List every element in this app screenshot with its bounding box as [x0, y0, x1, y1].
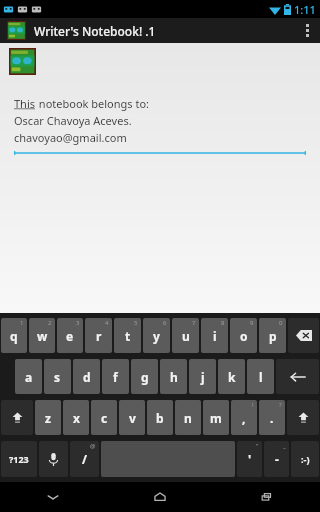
- staticText: h: [170, 369, 178, 385]
- staticText: v: [129, 410, 136, 426]
- button[interactable]: e: [57, 318, 83, 353]
- button[interactable]: t: [114, 318, 141, 353]
- staticText: 1: [20, 319, 24, 327]
- staticText: -: [275, 451, 279, 467]
- button[interactable]: Notebook cover image: [9, 48, 36, 75]
- staticText: ': [248, 451, 252, 467]
- button[interactable]: g: [131, 359, 158, 394]
- staticText: a: [25, 369, 33, 385]
- button[interactable]: ?123: [1, 441, 37, 477]
- staticText: s: [54, 369, 61, 385]
- staticText: w: [37, 328, 48, 344]
- staticText: 1:11: [294, 2, 316, 17]
- button[interactable]: :-): [291, 441, 319, 477]
- staticText: k: [228, 369, 236, 385]
- staticText: /: [82, 451, 87, 467]
- staticText: j: [201, 369, 205, 385]
- staticText: 2: [48, 319, 52, 327]
- staticText: 8: [221, 319, 225, 327]
- staticText: n: [184, 410, 192, 426]
- staticText: 4: [105, 319, 109, 327]
- staticText: :-): [301, 453, 310, 465]
- staticText: Oscar Chavoya Aceves.: [14, 113, 132, 128]
- staticText: chavoyao@gmail.com: [14, 130, 127, 145]
- button[interactable]: Home: [106, 482, 213, 512]
- staticText: 6: [163, 319, 167, 327]
- button[interactable]: Voice input: [39, 441, 68, 477]
- staticText: 9: [250, 319, 254, 327]
- staticText: g: [141, 369, 149, 385]
- button[interactable]: Recent apps: [213, 482, 320, 512]
- staticText: u: [182, 328, 190, 344]
- button[interactable]: More options: [294, 18, 320, 43]
- staticText: This: [14, 96, 36, 111]
- staticText: z: [45, 410, 51, 426]
- button[interactable]: Enter: [276, 359, 319, 394]
- staticText: t: [125, 328, 131, 344]
- staticText: i: [213, 328, 217, 344]
- staticText: x: [73, 410, 80, 426]
- button[interactable]: Delete: [288, 318, 319, 353]
- button[interactable]: h: [160, 359, 187, 394]
- button[interactable]: k: [218, 359, 245, 394]
- staticText: notebook belongs to:: [36, 96, 150, 111]
- button[interactable]: r: [85, 318, 112, 353]
- button[interactable]: /: [70, 441, 99, 477]
- staticText: ": [256, 442, 259, 450]
- staticText: d: [83, 369, 91, 385]
- staticText: 3: [76, 319, 80, 327]
- button[interactable]: q: [1, 318, 27, 353]
- button[interactable]: u: [172, 318, 199, 353]
- button[interactable]: i: [201, 318, 228, 353]
- button[interactable]: d: [73, 359, 100, 394]
- button[interactable]: m: [203, 400, 229, 435]
- button[interactable]: x: [63, 400, 89, 435]
- staticText: Writer's Notebook! .1: [34, 23, 156, 39]
- staticText: r: [96, 328, 102, 344]
- staticText: q: [10, 328, 18, 344]
- button[interactable]: z: [35, 400, 61, 435]
- button[interactable]: p: [259, 318, 286, 353]
- button[interactable]: s: [44, 359, 71, 394]
- button[interactable]: f: [102, 359, 129, 394]
- staticText: y: [153, 328, 160, 344]
- staticText: 7: [192, 319, 196, 327]
- button[interactable]: a: [15, 359, 42, 394]
- staticText: ,: [242, 410, 246, 426]
- button[interactable]: ,: [231, 400, 257, 435]
- button[interactable]: This: [14, 96, 320, 155]
- staticText: b: [156, 410, 164, 426]
- button[interactable]: Shift: [1, 400, 33, 435]
- button[interactable]: -: [264, 441, 289, 477]
- staticText: e: [66, 328, 74, 344]
- button[interactable]: l: [247, 359, 274, 394]
- staticText: ?123: [9, 453, 29, 465]
- button[interactable]: c: [91, 400, 117, 435]
- button[interactable]: j: [189, 359, 216, 394]
- staticText: c: [101, 410, 108, 426]
- button[interactable]: b: [147, 400, 173, 435]
- button[interactable]: ': [237, 441, 262, 477]
- staticText: ?: [279, 401, 282, 409]
- staticText: o: [240, 328, 248, 344]
- button[interactable]: n: [175, 400, 201, 435]
- staticText: l: [259, 369, 263, 385]
- button[interactable]: y: [143, 318, 170, 353]
- button[interactable]: w: [29, 318, 55, 353]
- button[interactable]: o: [230, 318, 257, 353]
- staticText: 5: [134, 319, 138, 327]
- button[interactable]: Hide keyboard: [0, 482, 106, 512]
- button[interactable]: App icon, navigate up: [7, 21, 26, 40]
- staticText: !: [252, 401, 254, 409]
- staticText: .: [270, 410, 274, 426]
- button[interactable]: .: [259, 400, 285, 435]
- staticText: _: [283, 442, 286, 450]
- staticText: f: [113, 369, 118, 385]
- staticText: 0: [279, 319, 283, 327]
- staticText: p: [269, 328, 277, 344]
- button[interactable]: Shift: [287, 400, 319, 435]
- staticText: @: [90, 442, 96, 450]
- button[interactable]: v: [119, 400, 145, 435]
- staticText: m: [210, 410, 222, 426]
